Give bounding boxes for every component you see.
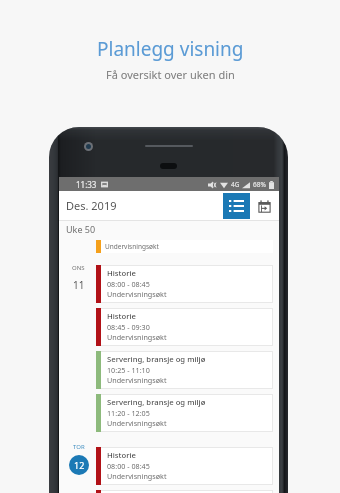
staticText: 10:25 - 11:10: [107, 365, 150, 375]
staticText: 11:20 - 12:05: [107, 408, 150, 418]
staticText: Undervisningsøkt: [107, 375, 167, 385]
button[interactable]: Calendar view: [250, 193, 279, 219]
staticText: Historie: [107, 450, 136, 460]
staticText: Få oversikt over uken din: [106, 67, 235, 82]
staticText: Uke 50: [66, 223, 96, 235]
staticText: Undervisningsøkt: [105, 242, 159, 251]
staticText: Planlegg visning: [97, 36, 244, 62]
button[interactable]: Historie: [96, 447, 273, 485]
staticText: Undervisningsøkt: [107, 289, 167, 299]
button[interactable]: Historie: [96, 490, 273, 493]
staticText: 11: [73, 278, 85, 292]
staticText: Historie: [107, 311, 136, 321]
staticText: ONS: [72, 264, 85, 272]
staticText: 4G: [231, 180, 240, 189]
button[interactable]: Historie: [96, 265, 273, 303]
staticText: Undervisningsøkt: [107, 471, 167, 481]
staticText: Servering, bransje og miljø: [107, 397, 206, 407]
staticText: Historie: [107, 268, 136, 278]
staticText: Servering, bransje og miljø: [107, 354, 206, 364]
staticText: TOR: [73, 443, 85, 451]
button[interactable]: Servering, bransje og miljø: [96, 351, 273, 389]
staticText: 08:00 - 08:45: [107, 461, 150, 471]
staticText: Des. 2019: [66, 198, 117, 213]
staticText: 08:00 - 08:45: [107, 279, 150, 289]
staticText: 12: [74, 459, 85, 471]
button[interactable]: List view: [223, 193, 250, 219]
staticText: 11:33: [76, 179, 97, 190]
staticText: 08:45 - 09:30: [107, 322, 150, 332]
button[interactable]: Servering, bransje og miljø: [96, 394, 273, 432]
staticText: 68%: [253, 180, 266, 189]
staticText: Undervisningsøkt: [107, 418, 167, 428]
staticText: Undervisningsøkt: [107, 332, 167, 342]
button[interactable]: Historie: [96, 308, 273, 346]
